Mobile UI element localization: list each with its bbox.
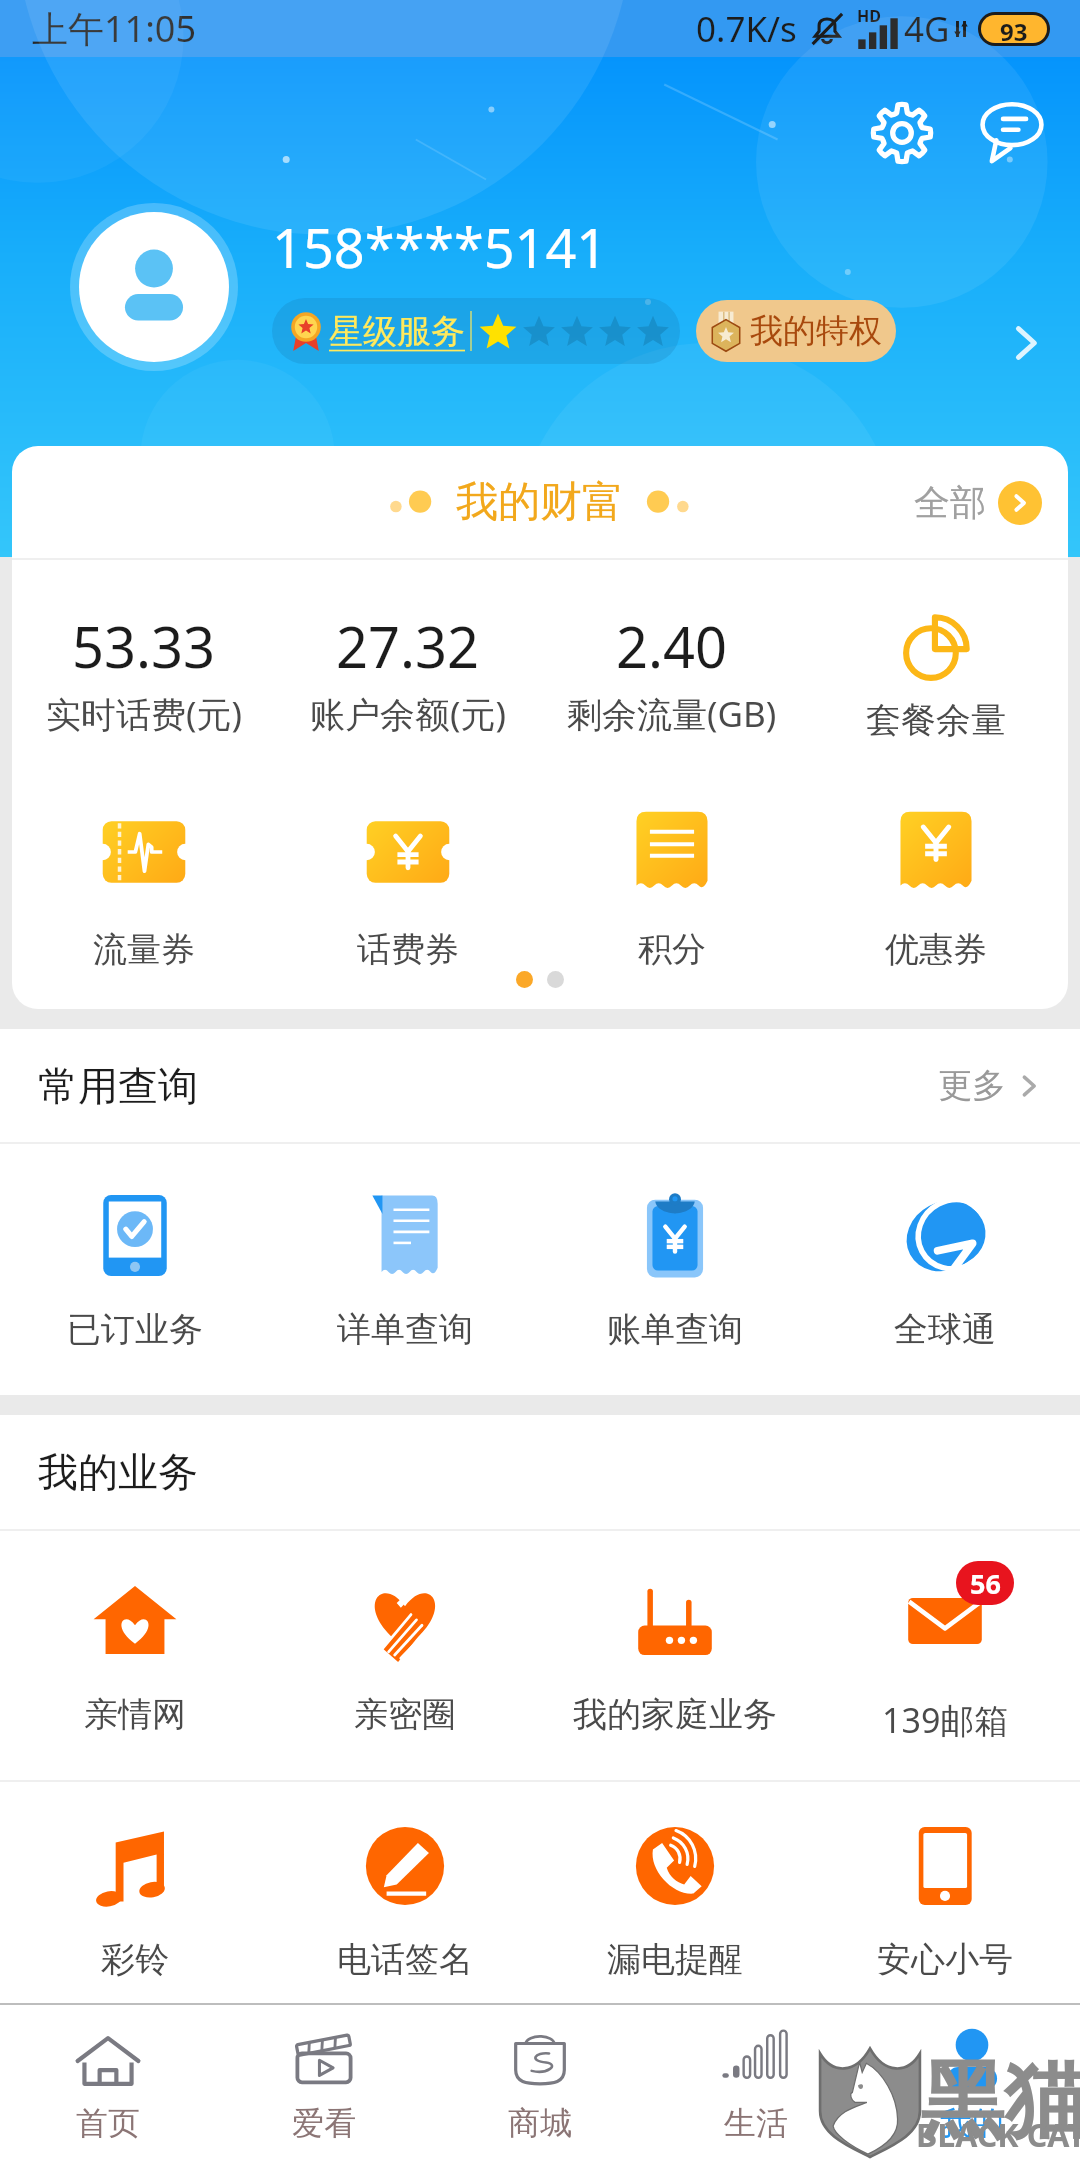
button[interactable]: 全球通 [810, 1190, 1080, 1351]
button[interactable]: 亲情网 [0, 1575, 270, 1736]
button[interactable]: 积分 [540, 804, 804, 971]
button[interactable]: 已订业务 [0, 1190, 270, 1351]
staticText: 全部 [914, 480, 986, 525]
staticText: 亲密圈 [354, 1693, 456, 1736]
button[interactable]: 头像 [79, 212, 229, 362]
button[interactable]: 我的 [864, 2023, 1080, 2143]
button[interactable]: 亲密圈 [270, 1575, 540, 1736]
button[interactable]: 56 [810, 1575, 1080, 1743]
button[interactable]: 优惠券 [804, 804, 1068, 971]
button[interactable]: 流量券 [12, 804, 276, 971]
button[interactable]: 生活 [648, 2023, 864, 2143]
staticText: 剩余流量(GB) [567, 690, 777, 738]
staticText: HD [857, 5, 881, 27]
staticText: 账单查询 [607, 1308, 743, 1351]
button[interactable]: 我的家庭业务 [540, 1575, 810, 1736]
staticText: 4G [904, 5, 950, 53]
button[interactable]: 星级服务 [272, 298, 680, 364]
staticText: 星级服务 [329, 310, 465, 353]
staticText: 积分 [638, 928, 706, 971]
staticText: 常用查询 [38, 1061, 198, 1111]
button[interactable]: 爱看 [216, 2023, 432, 2143]
button[interactable]: 消息 [966, 87, 1058, 179]
button[interactable]: 安心小号 [810, 1820, 1080, 1981]
button[interactable]: 商城 [432, 2023, 648, 2143]
button[interactable]: 全部 [914, 480, 1068, 525]
staticText: 套餐余量 [866, 698, 1006, 742]
staticText: 我的 [940, 2103, 1004, 2143]
staticText: 黑猫 [920, 2048, 1080, 2154]
staticText: 我的财富 [456, 476, 624, 529]
staticText: 2.40 [616, 608, 728, 684]
staticText: 话费券 [357, 928, 459, 971]
staticText: 93 [1000, 15, 1028, 43]
button[interactable]: 2.40 [540, 608, 804, 738]
staticText: 彩铃 [101, 1938, 169, 1981]
staticText: 生活 [724, 2103, 788, 2143]
button[interactable]: 27.32 [276, 608, 540, 738]
staticText: 0.7K/s [696, 5, 797, 53]
staticText: 27.32 [336, 608, 480, 684]
staticText: 电话签名 [337, 1938, 473, 1981]
staticText: BLACK CAT [916, 2113, 1080, 2157]
button[interactable]: 更多 [938, 1064, 1042, 1107]
staticText: 商城 [508, 2103, 572, 2143]
staticText: 首页 [76, 2103, 140, 2143]
button[interactable]: 彩铃 [0, 1820, 270, 1981]
staticText: 亲情网 [84, 1693, 186, 1736]
staticText: 上午11:05 [32, 4, 197, 53]
staticText: 爱看 [292, 2103, 356, 2143]
staticText: 我的业务 [38, 1447, 198, 1497]
button[interactable]: 电话签名 [270, 1820, 540, 1981]
staticText: 139邮箱 [882, 1697, 1009, 1743]
button[interactable]: 我的特权 [696, 300, 896, 362]
staticText: 我的特权 [750, 310, 882, 352]
staticText: 流量券 [93, 928, 195, 971]
staticText: 漏电提醒 [607, 1938, 743, 1981]
button[interactable]: 详单查询 [270, 1190, 540, 1351]
staticText: 53.33 [72, 608, 216, 684]
staticText: 详单查询 [337, 1308, 473, 1351]
staticText: 已订业务 [67, 1308, 203, 1351]
button[interactable]: 话费券 [276, 804, 540, 971]
button[interactable]: 53.33 [12, 608, 276, 738]
staticText: 账户余额(元) [310, 690, 507, 738]
staticText: 全球通 [894, 1308, 996, 1351]
staticText: 158****5141 [272, 210, 608, 284]
button[interactable]: 首页 [0, 2023, 216, 2143]
staticText: 优惠券 [885, 928, 987, 971]
button[interactable]: 漏电提醒 [540, 1820, 810, 1981]
button[interactable]: 设置 [856, 87, 948, 179]
staticText: 实时话费(元) [46, 690, 243, 738]
staticText: 更多 [938, 1064, 1006, 1107]
button[interactable]: 个人中心 [988, 305, 1064, 381]
staticText: 安心小号 [877, 1938, 1013, 1981]
staticText: 56 [970, 1565, 1001, 1602]
button[interactable]: 账单查询 [540, 1190, 810, 1351]
button[interactable]: 套餐余量 [804, 608, 1068, 742]
staticText: 我的家庭业务 [573, 1693, 777, 1736]
